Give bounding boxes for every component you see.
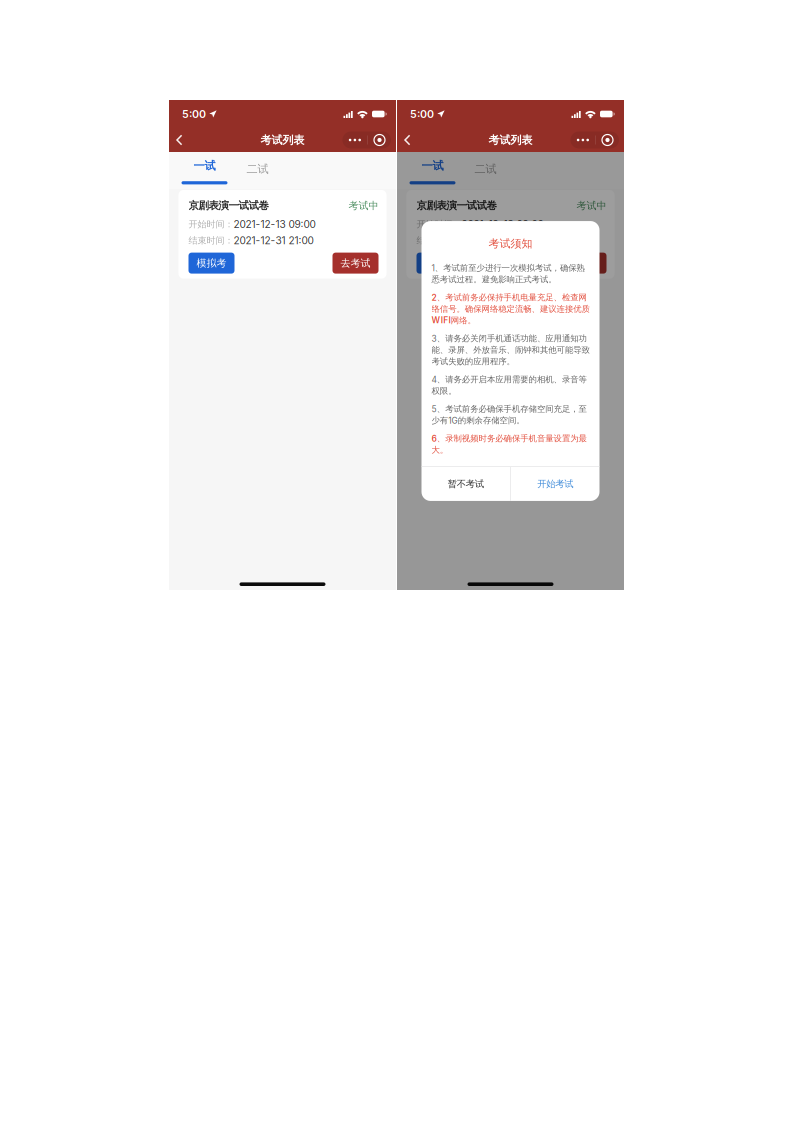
staticText: 6、录制视频时务必确保手机音量设置为最	[431, 433, 587, 444]
staticText: 络信号。确保网络稳定流畅、建议连接优质	[431, 304, 590, 314]
staticText: 结束时间：	[416, 235, 461, 246]
staticText: 大。	[431, 445, 448, 455]
staticText: 2021-12-13 09:00	[233, 218, 315, 230]
staticText: 1、考试前至少进行一次模拟考试，确保熟	[431, 263, 585, 273]
button[interactable]: Back	[169, 128, 190, 151]
staticText: 2、考试前务必保持手机电量充足、检查网	[431, 292, 587, 303]
staticText: 结束时间：	[188, 235, 233, 246]
button[interactable]: Back	[397, 128, 418, 151]
staticText: 2021-12-31 21:00	[233, 234, 313, 247]
button[interactable]: 暂不考试	[422, 467, 510, 501]
staticText: 5、考试前务必确保手机存储空间充足，至	[431, 404, 587, 414]
staticText: 权限。	[431, 386, 456, 396]
staticText: 模拟考	[424, 257, 454, 269]
staticText: 暂不考试	[448, 478, 484, 490]
staticText: 4、请务必开启本应用需要的相机、录音等	[431, 374, 587, 385]
staticText: 2021-12-13 09:00	[461, 218, 543, 230]
button[interactable]: 去考试	[332, 253, 378, 274]
staticText: 一试	[193, 159, 215, 173]
button[interactable]: 去考试	[560, 253, 606, 274]
staticText: 3、请务必关闭手机通话功能、应用通知功	[431, 333, 587, 344]
button[interactable]: 一试	[407, 152, 458, 189]
staticText: 5:00	[410, 107, 434, 120]
staticText: 考试中	[576, 199, 606, 212]
staticText: 考试列表	[488, 133, 532, 147]
staticText: 开始时间：	[416, 218, 461, 230]
staticText: 考试失败的应用程序。	[431, 356, 515, 367]
staticText: 一试	[421, 159, 443, 173]
staticText: 二试	[246, 162, 268, 176]
button[interactable]: Close	[368, 131, 391, 148]
staticText: 悉考试过程。避免影响正式考试。	[431, 274, 556, 285]
staticText: 二试	[474, 162, 496, 176]
button[interactable]: 开始考试	[511, 467, 599, 501]
staticText: 京剧表演一试试卷	[188, 199, 268, 212]
staticText: 开始考试	[537, 478, 573, 490]
staticText: 模拟考	[196, 257, 226, 269]
button[interactable]: Close	[596, 131, 619, 148]
button[interactable]: 二试	[458, 152, 513, 189]
staticText: 考试中	[348, 199, 378, 212]
staticText: 开始时间：	[188, 218, 233, 230]
staticText: 京剧表演一试试卷	[416, 199, 496, 212]
button[interactable]: More	[570, 131, 595, 148]
staticText: 去考试	[568, 257, 598, 269]
button[interactable]: 一试	[179, 152, 230, 189]
staticText: 5:00	[182, 107, 206, 120]
button[interactable]: 模拟考	[416, 253, 462, 274]
staticText: 考试列表	[260, 133, 304, 147]
staticText: 去考试	[340, 257, 370, 269]
button[interactable]: More	[342, 131, 367, 148]
staticText: 考试须知	[488, 237, 532, 251]
button[interactable]: 模拟考	[188, 253, 234, 274]
staticText: WIFI网络。	[431, 315, 475, 326]
staticText: 少有1G的剩余存储空间。	[431, 415, 524, 426]
staticText: 能、录屏、外放音乐、闹钟和其他可能导致	[431, 345, 590, 355]
button[interactable]: 二试	[230, 152, 285, 189]
staticText: 2021-12-31 21:00	[461, 234, 541, 247]
